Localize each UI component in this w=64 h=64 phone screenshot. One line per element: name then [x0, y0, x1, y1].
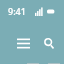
button[interactable]: Search	[44, 30, 54, 56]
staticText: 9:41	[8, 5, 26, 17]
button[interactable]: Menu	[10, 30, 36, 56]
